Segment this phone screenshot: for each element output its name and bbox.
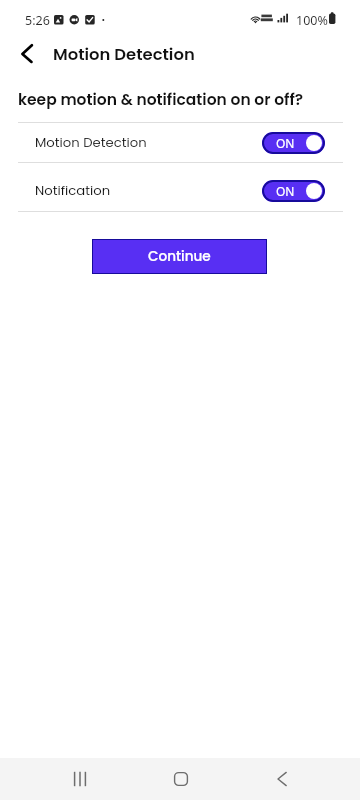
button[interactable]: Notification <box>0 163 360 212</box>
button[interactable]: Home <box>149 758 213 800</box>
staticText: ON <box>276 183 295 199</box>
staticText: 100% <box>296 12 328 29</box>
staticText: Continue <box>148 247 211 266</box>
staticText: Notification <box>35 181 111 199</box>
button[interactable]: Continue <box>92 239 267 274</box>
button[interactable]: Recent apps <box>48 758 112 800</box>
staticText: keep motion & notification on or off? <box>18 89 304 111</box>
button[interactable]: Motion Detection <box>0 123 360 163</box>
staticText: ON <box>276 135 295 151</box>
staticText: 5:26 <box>25 12 50 29</box>
staticText: Motion Detection <box>53 43 195 66</box>
button[interactable]: Navigate back <box>13 41 41 67</box>
button[interactable]: Back <box>250 758 314 800</box>
button[interactable]: Motion Detection toggle, on <box>262 132 325 154</box>
staticText: Motion Detection <box>35 133 147 151</box>
button[interactable]: Notification toggle, on <box>262 180 325 202</box>
